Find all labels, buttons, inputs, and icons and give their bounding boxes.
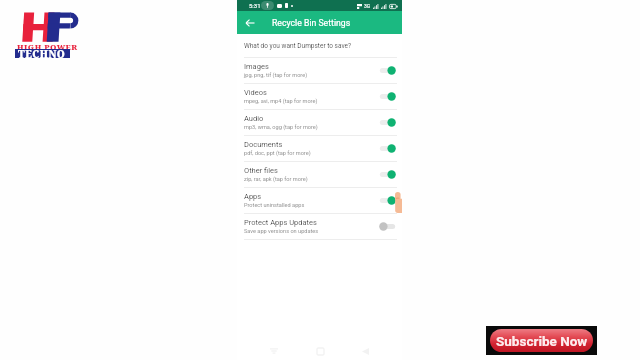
staticText: mpeg, avi, mp4 (tap for more) — [244, 98, 318, 105]
button[interactable]: Back — [241, 14, 259, 32]
button[interactable]: Toggle on — [379, 195, 396, 206]
staticText: HIGH POWER — [17, 42, 78, 53]
button[interactable]: Subscribe Now — [490, 329, 593, 352]
staticText: Videos — [244, 88, 267, 97]
staticText: pdf, doc, ppt (tap for more) — [244, 150, 311, 157]
button[interactable]: Audio — [237, 109, 402, 135]
button[interactable]: Toggle on — [379, 117, 396, 128]
button[interactable]: Other files — [237, 161, 402, 187]
staticText: Other files — [244, 166, 278, 175]
staticText: 5:31 — [249, 2, 261, 9]
button[interactable]: Images — [237, 57, 402, 83]
staticText: Recycle Bin Settings — [272, 18, 351, 28]
button[interactable]: Back — [356, 342, 374, 360]
staticText: Audio — [244, 114, 264, 123]
staticText: Apps — [244, 192, 262, 201]
staticText: TECHNO — [18, 48, 66, 61]
button[interactable]: Documents — [237, 135, 402, 161]
staticText: Save app versions on updates — [244, 228, 319, 235]
button[interactable]: Toggle on — [379, 91, 396, 102]
button[interactable]: Home — [311, 342, 329, 360]
button[interactable]: Toggle on — [379, 143, 396, 154]
staticText: Images — [244, 62, 269, 71]
staticText: jpg, png, tif (tap for more) — [244, 72, 308, 79]
staticText: Protect uninstalled apps — [244, 202, 305, 209]
staticText: mp3, wma, ogg (tap for more) — [244, 124, 318, 131]
staticText: Protect Apps Updates — [244, 218, 317, 227]
button[interactable]: Toggle on — [379, 65, 396, 76]
button[interactable]: Toggle on — [379, 169, 396, 180]
staticText: 3G — [364, 3, 371, 9]
button[interactable]: Videos — [237, 83, 402, 109]
button[interactable]: Toggle off — [379, 221, 396, 232]
staticText: Documents — [244, 140, 283, 149]
staticText: zip, rar, apk (tap for more) — [244, 176, 308, 183]
button[interactable]: Protect Apps Updates — [237, 213, 402, 239]
staticText: Subscribe Now — [496, 333, 588, 349]
staticText: What do you want Dumpster to save? — [244, 42, 352, 50]
button[interactable]: Apps — [237, 187, 402, 213]
